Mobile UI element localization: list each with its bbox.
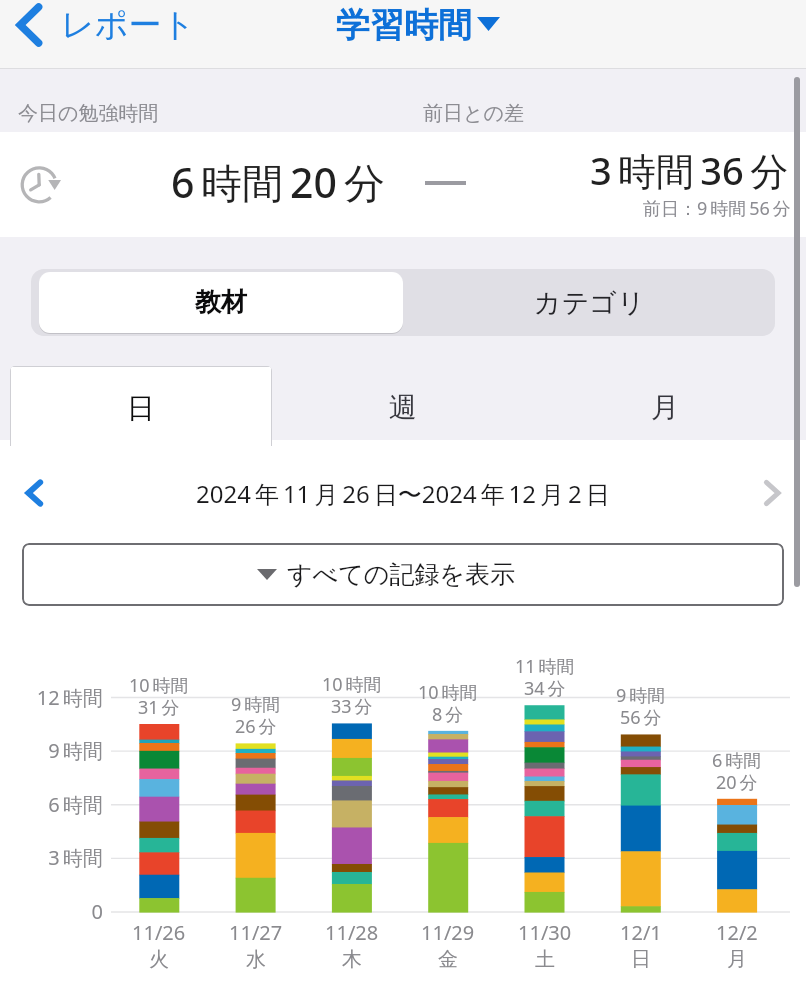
staticText: 土 <box>535 947 555 972</box>
staticText: 日 <box>631 947 651 972</box>
staticText: 26 分 <box>235 714 277 739</box>
staticText: 12 時間 <box>0 684 103 711</box>
staticText: 9 時間 <box>616 683 666 708</box>
staticText: 3 時間 36 分 <box>590 144 789 196</box>
staticText: 10 時間 <box>129 673 189 698</box>
staticText: 11/30 <box>518 919 572 946</box>
staticText: 火 <box>149 947 169 972</box>
button[interactable]: 日 <box>11 367 271 446</box>
button[interactable]: 月 <box>534 366 796 440</box>
button[interactable]: すべての記録を表示 <box>22 543 784 606</box>
staticText: 月 <box>651 390 679 425</box>
staticText: 2024 年 11 月 26 日〜2024 年 12 月 2 日 <box>196 477 610 510</box>
button[interactable]: 教材 <box>31 269 403 336</box>
staticText: 31 分 <box>138 695 180 720</box>
other: 勉強時間 <box>17 163 61 207</box>
staticText: 56 分 <box>620 705 662 730</box>
staticText: 11/29 <box>421 919 475 946</box>
staticText: 11/28 <box>325 919 379 946</box>
staticText: 教材 <box>195 286 247 319</box>
staticText: 前日との差 <box>423 101 524 126</box>
staticText: 3 時間 <box>0 844 103 871</box>
staticText: 前日：9 時間 56 分 <box>643 196 791 221</box>
staticText: 11 時間 <box>515 654 575 679</box>
staticText: カテゴリ <box>534 286 645 320</box>
staticText: 6 時間 <box>712 748 762 773</box>
staticText: 木 <box>342 947 362 972</box>
staticText: すべての記録を表示 <box>287 559 515 590</box>
staticText: 8 分 <box>432 702 464 727</box>
staticText: 6 時間 20 分 <box>171 154 385 210</box>
staticText: 月 <box>727 947 747 972</box>
staticText: 週 <box>389 390 417 425</box>
button[interactable]: 次の週 <box>744 465 800 521</box>
staticText: 10 時間 <box>418 680 478 705</box>
staticText: 学習時間 <box>336 4 472 47</box>
staticText: 0 <box>0 898 103 925</box>
staticText: 11/26 <box>132 919 186 946</box>
staticText: 10 時間 <box>322 672 382 697</box>
staticText: 日 <box>127 391 155 426</box>
staticText: 11/27 <box>229 919 283 946</box>
staticText: 9 時間 <box>0 737 103 764</box>
staticText: 6 時間 <box>0 791 103 818</box>
staticText: 9 時間 <box>231 692 281 717</box>
staticText: 34 分 <box>524 676 566 701</box>
staticText: 20 分 <box>716 770 758 795</box>
button[interactable]: 週 <box>272 366 534 440</box>
staticText: 金 <box>438 947 458 972</box>
staticText: レポート <box>61 4 196 46</box>
button[interactable]: レポート <box>14 0 196 53</box>
button[interactable]: 前の週 <box>6 465 62 521</box>
staticText: 33 分 <box>331 694 373 719</box>
staticText: 今日の勉強時間 <box>18 101 159 126</box>
staticText: 12/1 <box>620 919 662 946</box>
button[interactable]: 学習時間 <box>336 4 500 47</box>
staticText: 12/2 <box>716 919 758 946</box>
staticText: 水 <box>246 947 266 972</box>
button[interactable]: カテゴリ <box>403 269 775 336</box>
